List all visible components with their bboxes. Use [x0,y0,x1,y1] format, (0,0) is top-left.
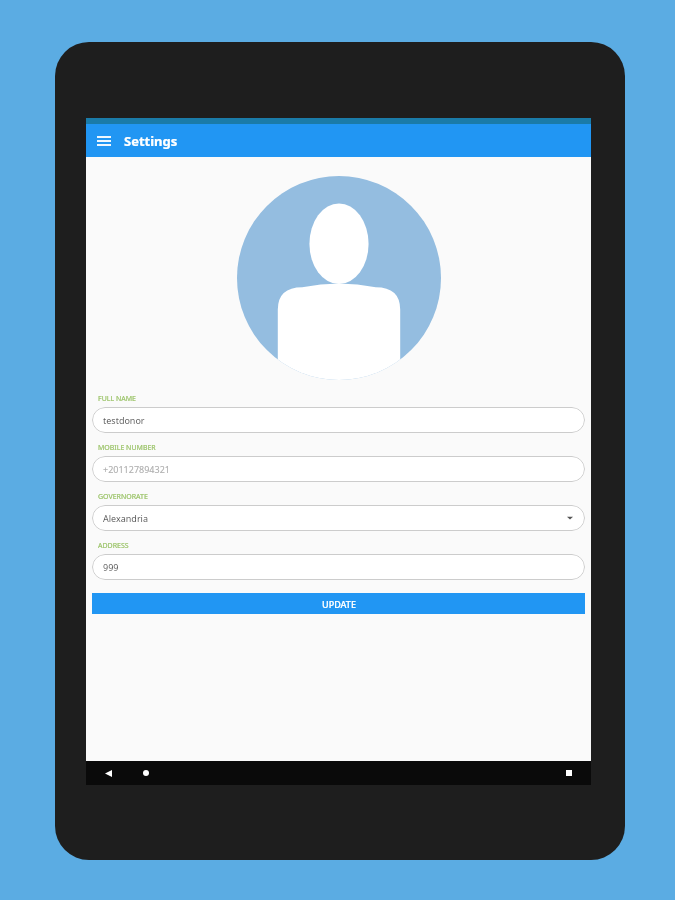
button[interactable]: UPDATE [92,593,585,614]
staticText: Alexandria [103,512,148,524]
button[interactable]: Profile picture [237,176,441,380]
staticText: MOBILE NUMBER [98,443,156,453]
staticText: testdonor [103,414,145,426]
staticText: FULL NAME [98,394,136,404]
button[interactable]: +201127894321 [92,456,585,482]
button[interactable]: Home [138,765,154,781]
staticText: +201127894321 [103,463,170,475]
button[interactable]: Alexandria [92,505,585,531]
staticText: UPDATE [322,598,356,610]
button[interactable]: Back [100,765,116,781]
staticText: 999 [103,561,119,573]
staticText: GOVERNORATE [98,492,148,502]
button[interactable]: 999 [92,554,585,580]
button[interactable]: testdonor [92,407,585,433]
button[interactable]: Recent apps [561,765,577,781]
button[interactable]: Open navigation menu [92,129,116,153]
staticText: Settings [124,132,178,150]
staticText: ADDRESS [98,541,129,551]
